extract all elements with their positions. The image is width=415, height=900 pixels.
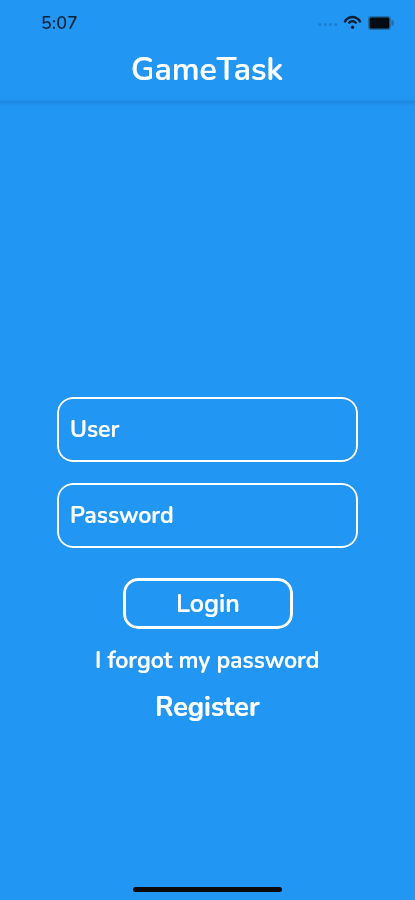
- staticText: Register: [155, 689, 260, 726]
- staticText: GameTask: [131, 48, 284, 92]
- staticText: User: [70, 414, 120, 445]
- staticText: 5:07: [41, 11, 78, 36]
- button[interactable]: User: [57, 397, 358, 462]
- staticText: Password: [70, 500, 174, 531]
- staticText: Login: [176, 587, 240, 621]
- button[interactable]: Password: [57, 483, 358, 548]
- button[interactable]: I forgot my password: [85, 643, 330, 678]
- button[interactable]: Register: [145, 687, 270, 728]
- staticText: I forgot my password: [95, 645, 320, 676]
- button[interactable]: Login: [123, 578, 293, 629]
